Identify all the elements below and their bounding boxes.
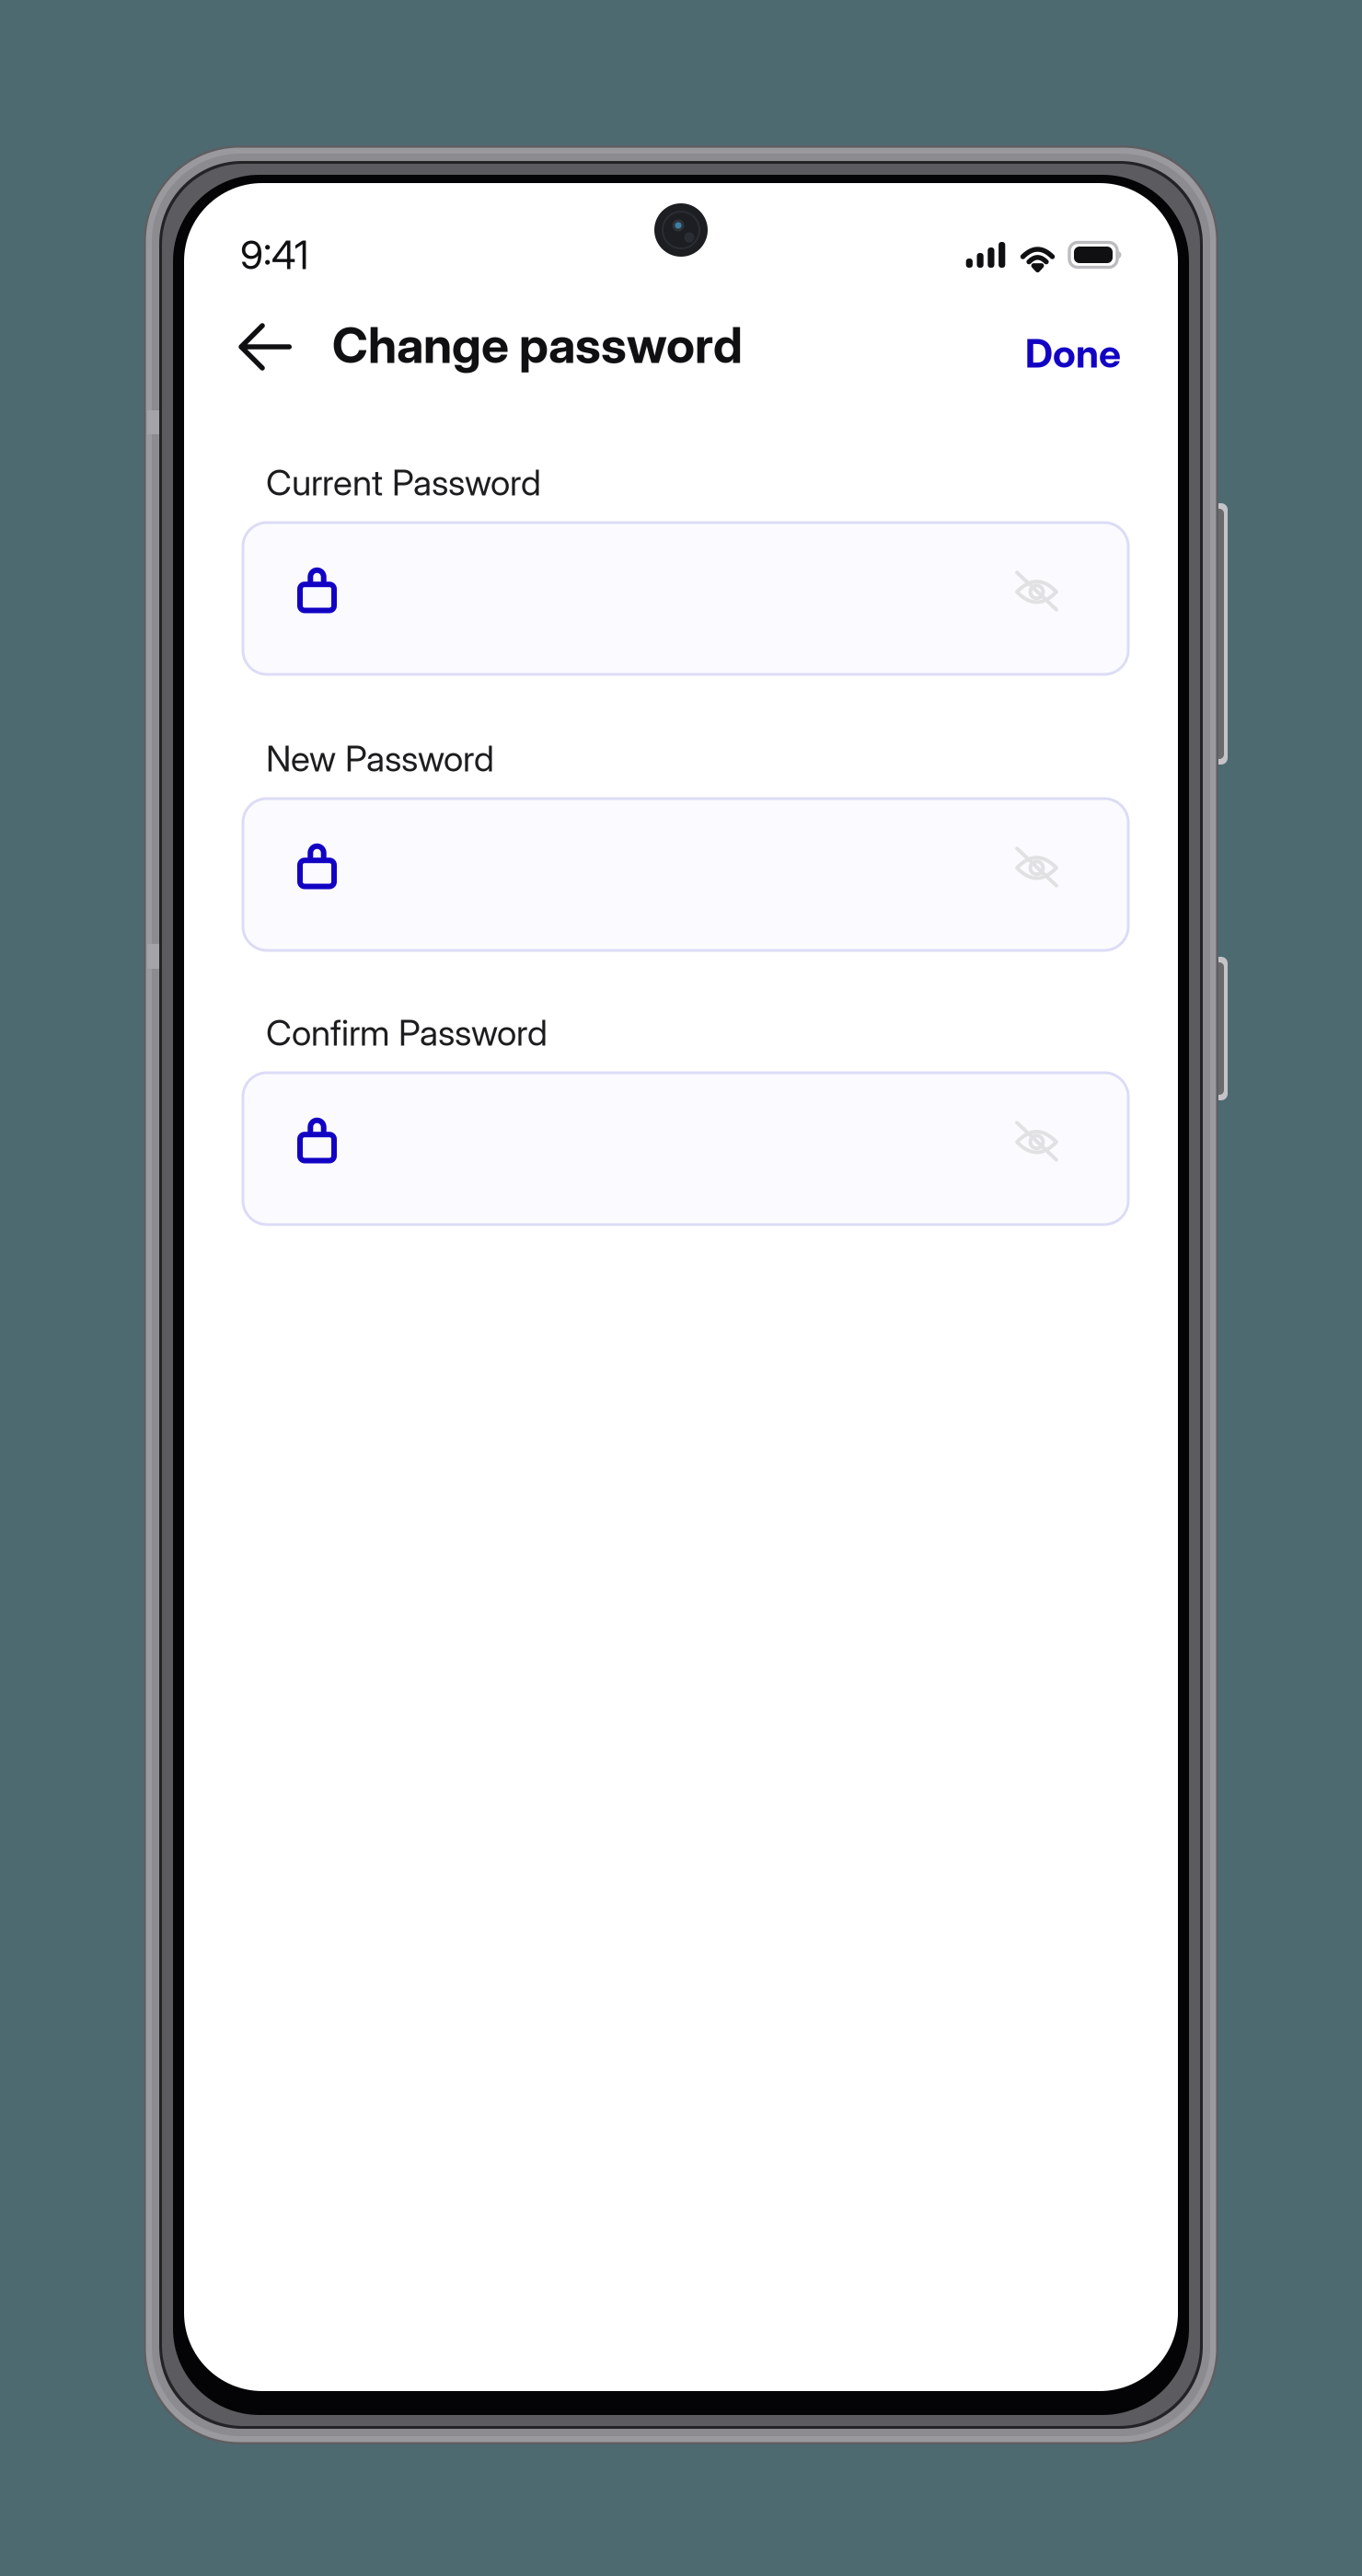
staticText: New Password xyxy=(266,737,494,780)
staticText: Change password xyxy=(332,315,743,375)
staticText: 9:41 xyxy=(240,231,308,279)
button[interactable]: Back xyxy=(238,305,332,385)
staticText: Done xyxy=(1025,330,1121,377)
staticText: Current Password xyxy=(266,461,541,504)
button[interactable] xyxy=(243,799,1128,950)
button[interactable]: Done xyxy=(1022,305,1118,385)
button[interactable] xyxy=(243,1073,1128,1225)
staticText: Confirm Password xyxy=(266,1011,548,1054)
button[interactable] xyxy=(243,523,1128,674)
